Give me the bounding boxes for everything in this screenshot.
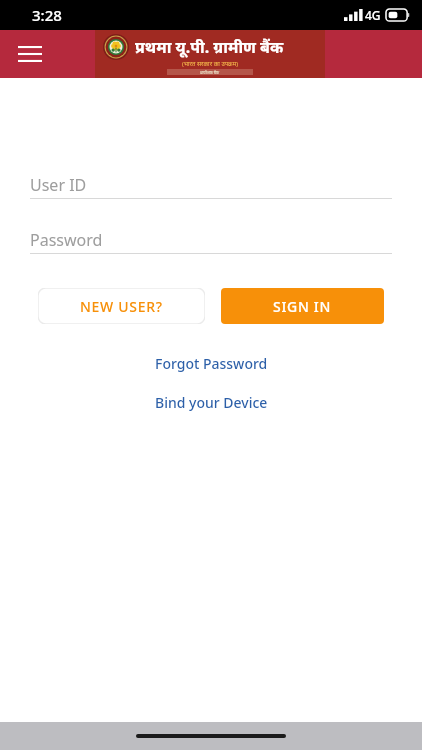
button[interactable]: Open navigation menu [10, 34, 50, 74]
button[interactable]: Password [30, 227, 392, 254]
staticText: (भारत सरकार का उपक्रम) [182, 60, 239, 68]
button[interactable]: SIGN IN [221, 288, 384, 324]
staticText: NEW USER? [80, 297, 163, 316]
button[interactable]: NEW USER? [38, 288, 205, 324]
staticText: Forgot Password [155, 354, 268, 373]
staticText: प्रायोजक बैंक [200, 70, 220, 75]
button[interactable]: Forgot Password [141, 350, 282, 377]
staticText: SIGN IN [273, 297, 332, 316]
staticText: प्रथमा यू.पी. ग्रामीण बैंक [135, 36, 284, 58]
button[interactable]: Bind your Device [141, 389, 282, 416]
staticText: User ID [30, 174, 87, 196]
button[interactable]: User ID [30, 172, 392, 199]
staticText: 3:28 [32, 5, 62, 25]
staticText: Password [30, 229, 103, 251]
staticText: 4G [365, 7, 381, 23]
staticText: Bind your Device [155, 393, 268, 412]
